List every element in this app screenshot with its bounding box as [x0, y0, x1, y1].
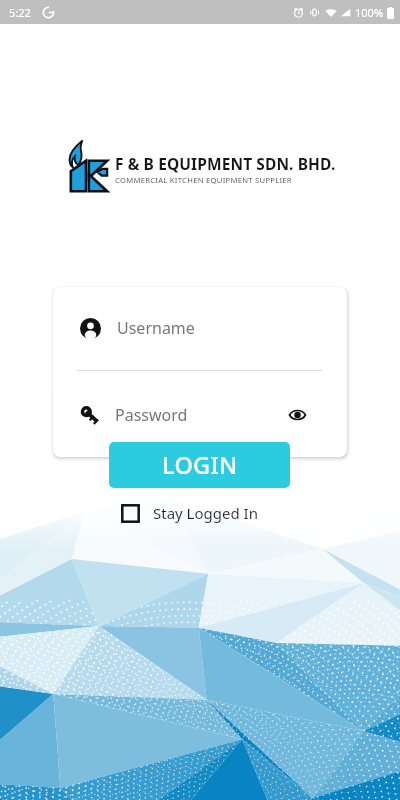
staticText: Password	[115, 404, 188, 426]
button[interactable]: Password	[53, 395, 347, 435]
button[interactable]: Show password	[281, 399, 313, 431]
staticText: 5:22	[9, 5, 31, 20]
staticText: 100%	[355, 5, 384, 20]
staticText: LOGIN	[162, 449, 238, 481]
button[interactable]: Stay Logged In	[121, 500, 258, 526]
button[interactable]: LOGIN	[109, 442, 290, 488]
staticText: Username	[117, 317, 195, 339]
staticText: COMMERCIAL KITCHEN EQUIPMENT SUPPLIER	[115, 175, 292, 185]
staticText: Stay Logged In	[153, 503, 258, 523]
button[interactable]: Username	[53, 308, 347, 348]
staticText: F & B EQUIPMENT SDN. BHD.	[115, 153, 336, 174]
